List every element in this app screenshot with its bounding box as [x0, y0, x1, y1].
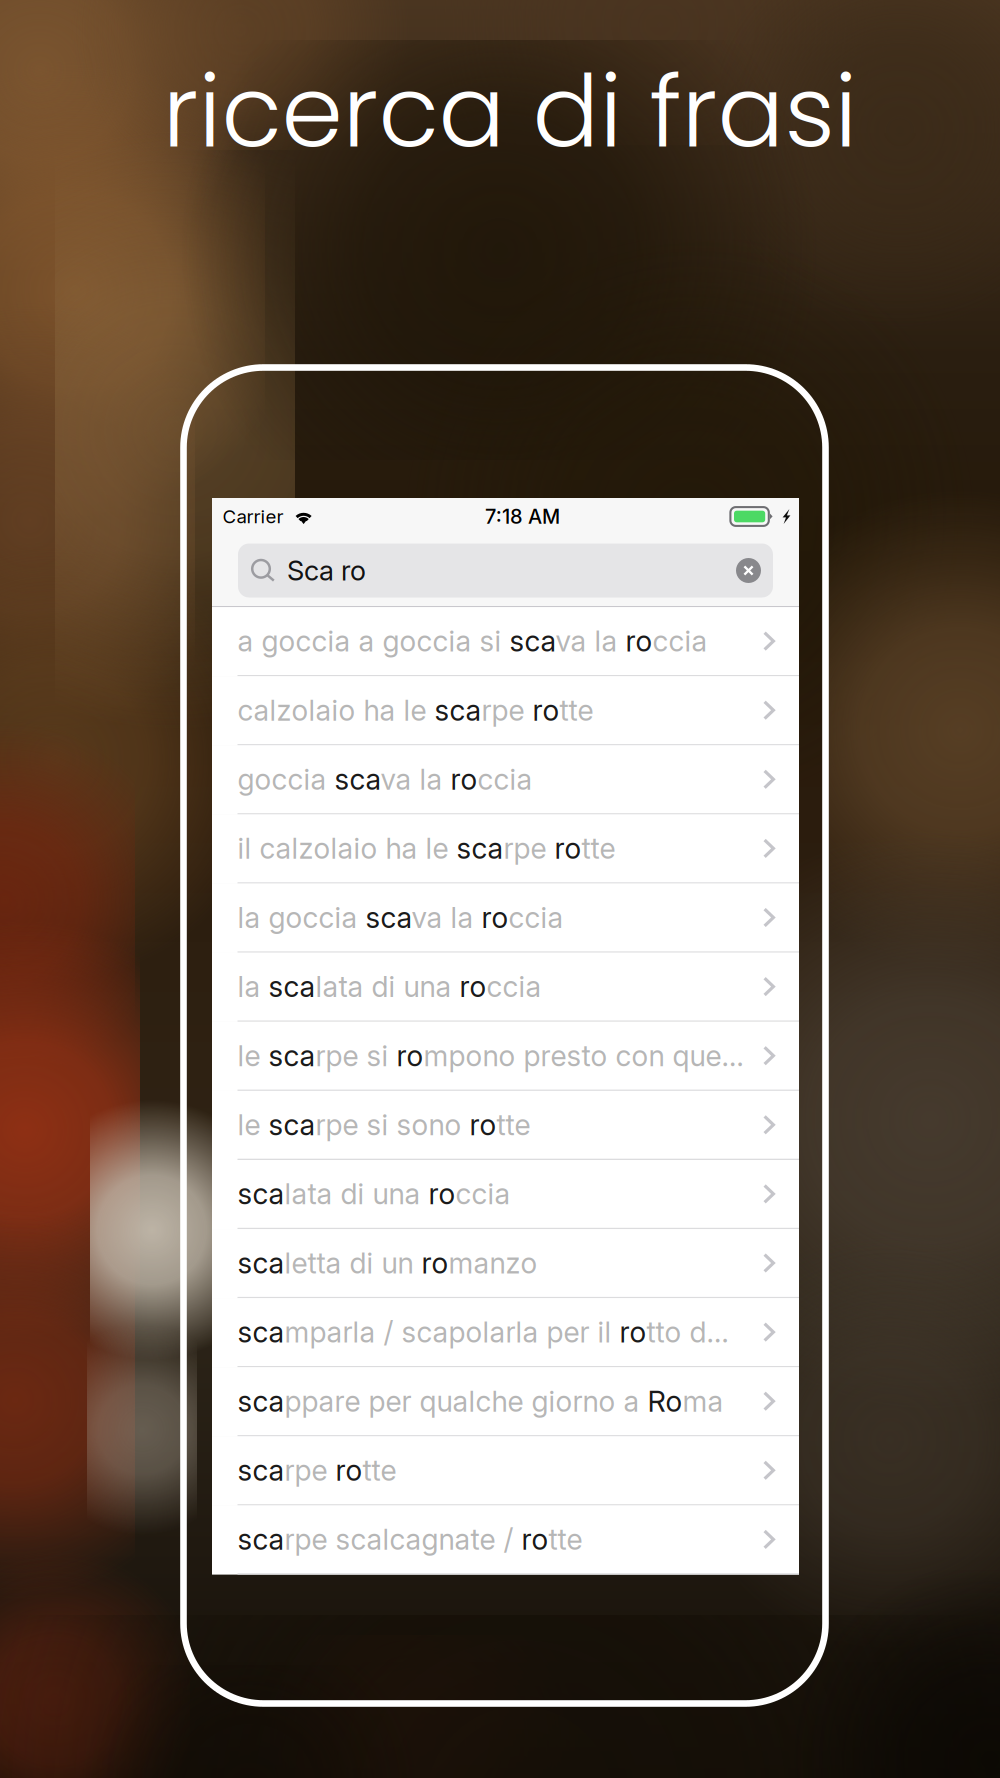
button[interactable]: a goccia a goccia si scava la roccia — [212, 607, 799, 676]
staticText: goccia scava la roccia — [237, 762, 532, 797]
button[interactable]: Clear search — [736, 558, 761, 583]
staticText: scappare per qualche giorno a Roma — [237, 1384, 723, 1419]
button[interactable]: le scarpe si sono rotte — [212, 1091, 799, 1160]
button[interactable]: scarpe scalcagnate / rotte — [212, 1505, 799, 1575]
button[interactable]: il calzolaio ha le scarpe rotte — [212, 814, 799, 884]
button[interactable]: le scarpe si rompono presto con que… — [212, 1022, 799, 1091]
staticText: le scarpe si sono rotte — [237, 1107, 530, 1142]
staticText: scamparla / scapolarla per il rotto d… — [237, 1315, 728, 1349]
staticText: la scalata di una roccia — [237, 969, 541, 1004]
staticText: la goccia scava la roccia — [237, 900, 563, 935]
button[interactable]: scaletta di un romanzo — [212, 1229, 799, 1298]
button[interactable]: scamparla / scapolarla per il rotto d… — [212, 1298, 799, 1367]
button[interactable]: scappare per qualche giorno a Roma — [212, 1367, 799, 1436]
staticText: scalata di una roccia — [237, 1177, 510, 1211]
button[interactable]: calzolaio ha le scarpe rotte — [212, 676, 799, 745]
staticText: scarpe scalcagnate / rotte — [237, 1522, 582, 1557]
button[interactable]: goccia scava la roccia — [212, 745, 799, 814]
button[interactable]: la scalata di una roccia — [212, 953, 799, 1022]
staticText: Sca ro — [287, 554, 366, 587]
button[interactable]: scalata di una roccia — [212, 1160, 799, 1229]
staticText: le scarpe si rompono presto con que… — [237, 1038, 743, 1073]
staticText: Carrier — [223, 505, 284, 528]
staticText: calzolaio ha le scarpe rotte — [237, 693, 593, 728]
staticText: a goccia a goccia si scava la roccia — [237, 624, 707, 658]
staticText: scaletta di un romanzo — [237, 1246, 537, 1280]
button[interactable]: la goccia scava la roccia — [212, 884, 799, 953]
staticText: il calzolaio ha le scarpe rotte — [237, 831, 615, 866]
staticText: scarpe rotte — [237, 1453, 396, 1488]
staticText: ricerca di frasi — [162, 43, 857, 181]
staticText: 7:18 AM — [485, 504, 560, 529]
button[interactable]: scarpe rotte — [212, 1436, 799, 1505]
